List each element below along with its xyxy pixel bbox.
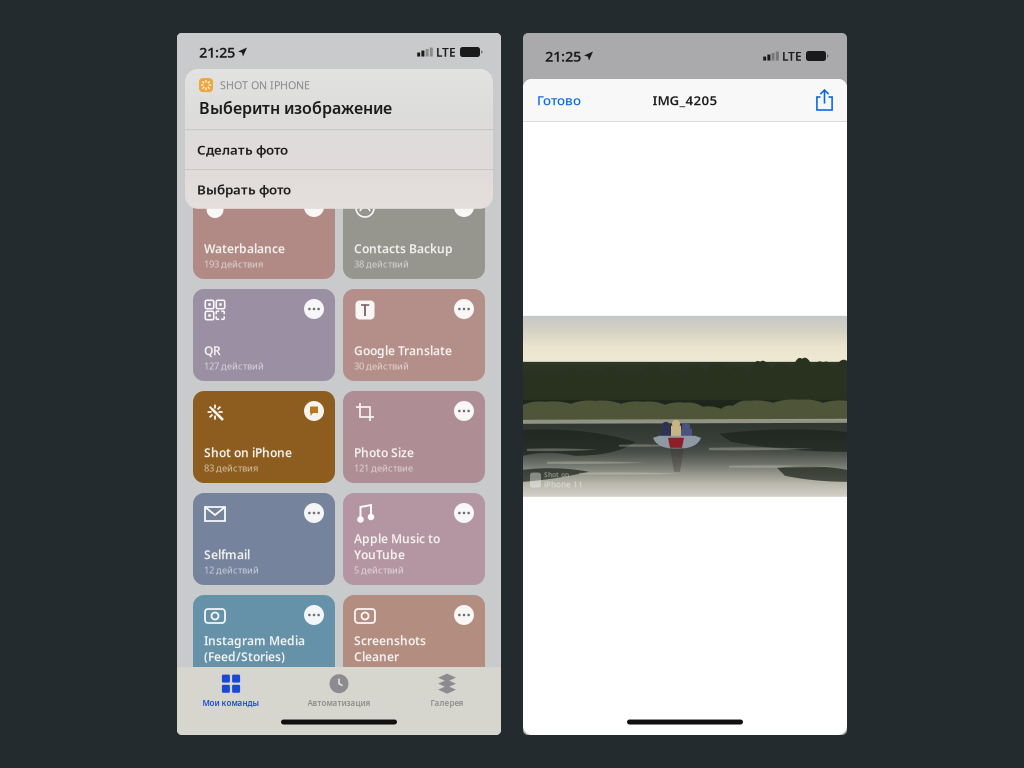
button[interactable]: Автоматизация <box>285 673 393 708</box>
staticText: Готово <box>537 91 581 109</box>
button[interactable]: Screenshots Cleaner <box>343 595 485 687</box>
staticText: 127 действий <box>204 360 264 372</box>
staticText: 38 действий <box>354 258 409 270</box>
staticText: Выбрать фото <box>197 180 291 198</box>
staticText: Автоматизация <box>307 698 370 708</box>
staticText: Photo Size <box>354 445 414 461</box>
button[interactable]: Выбрать фото <box>185 170 493 209</box>
staticText: Selfmail <box>204 547 250 563</box>
button[interactable]: Сделать фото <box>185 130 493 169</box>
staticText: Выберитн изображение <box>199 97 392 118</box>
staticText: 37 действий <box>204 666 259 678</box>
button[interactable]: T <box>343 289 485 381</box>
staticText: Waterbalance <box>204 241 285 257</box>
button[interactable]: Selfmail <box>193 493 335 585</box>
staticText: 21:25 <box>199 42 235 62</box>
staticText: IMG_4205 <box>652 91 717 109</box>
staticText: LTE <box>436 44 456 60</box>
staticText: 83 действия <box>204 462 258 474</box>
staticText: Мои команды <box>202 698 259 708</box>
staticText: Shot on <box>544 470 569 479</box>
staticText: 21:25 <box>545 46 581 66</box>
button[interactable]: Share <box>802 79 847 121</box>
button[interactable]: Shot on iPhone <box>193 391 335 483</box>
staticText: T <box>360 299 369 321</box>
staticText: 121 действие <box>354 462 413 474</box>
staticText: 12 действий <box>204 564 259 576</box>
staticText: 193 действия <box>204 258 263 270</box>
staticText: Галерея <box>430 698 463 708</box>
staticText: 22 действия <box>354 666 408 678</box>
staticText: Screenshots Cleaner <box>354 633 426 665</box>
button[interactable]: Галерея <box>393 673 501 708</box>
staticText: Shot on iPhone <box>204 445 292 461</box>
staticText: Google Translate <box>354 343 452 359</box>
button[interactable]: Готово <box>523 79 595 121</box>
staticText: 5 действий <box>354 564 404 576</box>
button[interactable]: Мои команды <box>177 673 285 708</box>
staticText: SHOT ON IPHONE <box>220 78 310 92</box>
button[interactable]: Contacts Backup <box>343 187 485 279</box>
staticText: LTE <box>782 48 802 64</box>
button[interactable]: Waterbalance <box>193 187 335 279</box>
staticText: Сделать фото <box>197 141 288 158</box>
staticText: Apple Music to YouTube <box>354 531 440 563</box>
button[interactable]: QR <box>193 289 335 381</box>
staticText: 30 действий <box>354 360 409 372</box>
staticText: Contacts Backup <box>354 241 453 257</box>
button[interactable]: Instagram Media (Feed/Stories) <box>193 595 335 687</box>
staticText: iPhone 11 <box>544 479 583 490</box>
button[interactable]: Photo Size <box>343 391 485 483</box>
button[interactable]: Apple Music to YouTube <box>343 493 485 585</box>
staticText: QR <box>204 343 221 359</box>
staticText: Instagram Media (Feed/Stories) <box>204 633 305 665</box>
